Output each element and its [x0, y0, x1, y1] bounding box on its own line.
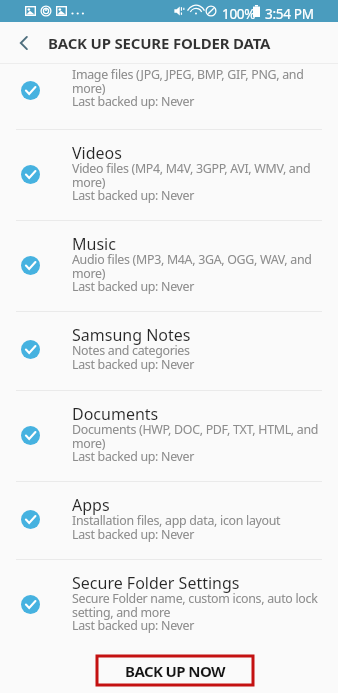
button[interactable]: Videos: [0, 130, 338, 221]
staticText: Video files (MP4, M4V, 3GPP, AVI, WMV, a…: [72, 160, 325, 203]
staticText: Samsung Notes: [72, 324, 325, 346]
staticText: BACK UP SECURE FOLDER DATA: [48, 33, 271, 53]
staticText: Music: [72, 233, 325, 255]
staticText: 100%: [222, 5, 256, 23]
staticText: Audio files (MP3, M4A, 3GA, OGG, WAV, an…: [72, 251, 325, 294]
button[interactable]: Secure Folder Settings: [0, 560, 338, 651]
button[interactable]: BACK UP NOW: [97, 656, 253, 685]
staticText: Documents: [72, 403, 325, 425]
staticText: Installation files, app data, icon layou…: [72, 512, 325, 542]
staticText: Apps: [72, 494, 325, 516]
staticText: Secure Folder name, custom icons, auto l…: [72, 590, 325, 633]
button[interactable]: Samsung Notes: [0, 312, 338, 391]
staticText: BACK UP NOW: [125, 661, 225, 681]
button[interactable]: Apps: [0, 482, 338, 560]
staticText: 3:54 PM: [265, 5, 314, 23]
staticText: Image files (JPG, JPEG, BMP, GIF, PNG, a…: [72, 66, 325, 109]
staticText: Secure Folder Settings: [72, 572, 325, 594]
staticText: Videos: [72, 142, 325, 164]
staticText: Notes and categories Last backed up: Nev…: [72, 342, 325, 372]
button[interactable]: Image files (JPG, JPEG, BMP, GIF, PNG, a…: [0, 64, 338, 130]
button[interactable]: Music: [0, 221, 338, 312]
staticText: Documents (HWP, DOC, PDF, TXT, HTML, and…: [72, 421, 325, 464]
button[interactable]: Documents: [0, 391, 338, 482]
button[interactable]: Navigate up: [0, 22, 48, 63]
